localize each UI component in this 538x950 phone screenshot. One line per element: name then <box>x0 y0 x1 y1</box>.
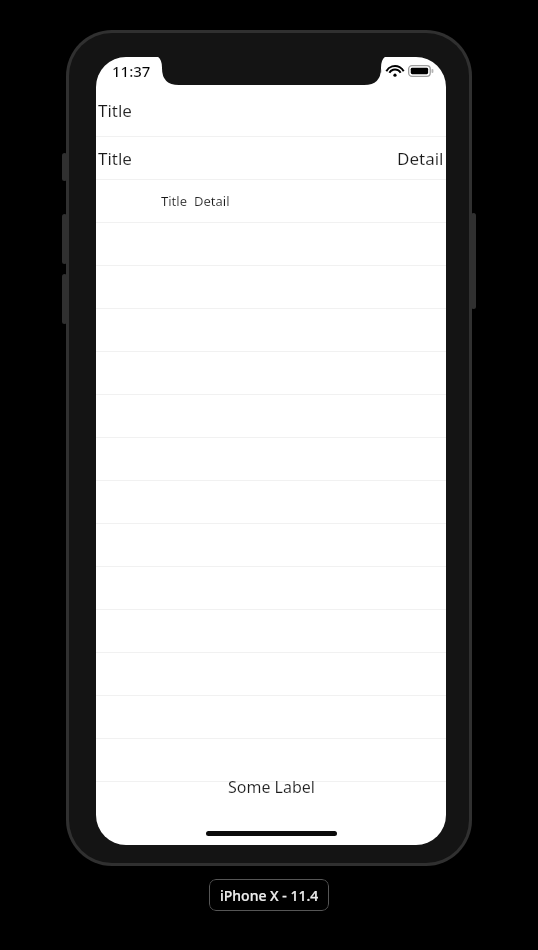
button[interactable]: Title <box>96 180 446 222</box>
staticText: Detail <box>194 192 230 210</box>
other: Volume down <box>62 274 67 324</box>
staticText: Title <box>98 99 132 122</box>
staticText: iPhone X - 11.4 <box>220 886 319 905</box>
button[interactable]: iPhone X - 11.4 <box>209 879 329 911</box>
button[interactable]: Title <box>96 137 446 179</box>
staticText: 11:37 <box>112 61 151 81</box>
staticText: Title <box>161 192 187 210</box>
other: Ring silent switch <box>62 153 67 181</box>
other: Volume up <box>62 214 67 264</box>
button[interactable]: Some Label <box>96 775 446 799</box>
staticText: Title <box>98 147 132 170</box>
staticText: Detail <box>397 147 444 170</box>
button[interactable]: Title <box>96 85 446 136</box>
staticText: Some Label <box>228 776 315 798</box>
